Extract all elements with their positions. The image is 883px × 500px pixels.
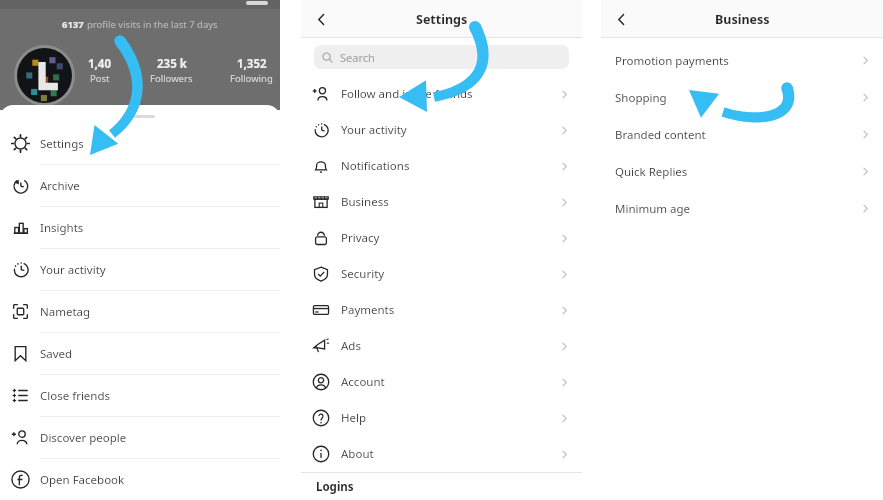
button[interactable]: Back (601, 0, 641, 38)
button[interactable]: Branded content (601, 116, 883, 153)
button[interactable]: Shopping (601, 79, 883, 116)
button[interactable]: Minimum age (601, 190, 883, 227)
button[interactable]: Insights (0, 207, 280, 249)
button[interactable]: Your activity (0, 249, 280, 291)
button[interactable]: Ads (301, 328, 582, 364)
staticText: Insights (40, 220, 84, 236)
staticText: Discover people (40, 430, 127, 446)
staticText: Privacy (341, 230, 380, 246)
staticText: Search (340, 50, 375, 65)
staticText: Notifications (341, 158, 410, 174)
staticText: Security (341, 266, 385, 282)
button[interactable]: Help (301, 400, 582, 436)
staticText: Open Facebook (40, 472, 125, 488)
staticText: Shopping (615, 90, 667, 106)
button[interactable]: Privacy (301, 220, 582, 256)
staticText: profile visits in the last 7 days (87, 18, 218, 31)
staticText: Business (341, 194, 389, 210)
staticText: Settings (416, 11, 468, 28)
button[interactable]: Saved (0, 333, 280, 375)
staticText: Close friends (40, 388, 111, 404)
button[interactable]: Logins (301, 473, 582, 500)
button[interactable]: Payments (301, 292, 582, 328)
button[interactable]: Nametag (0, 291, 280, 333)
button[interactable]: Notifications (301, 148, 582, 184)
staticText: Follow and invite friends (341, 86, 473, 102)
button[interactable]: Security (301, 256, 582, 292)
staticText: 6137 (62, 18, 84, 31)
button[interactable]: Back (301, 0, 341, 38)
staticText: Payments (341, 302, 395, 318)
button[interactable]: Archive (0, 165, 280, 207)
staticText: Business (715, 11, 770, 28)
staticText: 235 k (157, 56, 187, 72)
staticText: Quick Replies (615, 164, 688, 180)
button[interactable]: Search (314, 45, 569, 69)
staticText: Archive (40, 178, 80, 194)
staticText: Help (341, 410, 367, 426)
staticText: Followers (150, 72, 193, 85)
staticText: Ads (341, 338, 361, 354)
staticText: Saved (40, 346, 73, 362)
staticText: Account (341, 374, 385, 390)
button[interactable]: Open Facebook (0, 459, 280, 500)
button[interactable]: About (301, 436, 582, 472)
button[interactable]: Account (301, 364, 582, 400)
staticText: Minimum age (615, 201, 691, 217)
button[interactable]: Close friends (0, 375, 280, 417)
staticText: Following (230, 72, 273, 85)
staticText: Nametag (40, 304, 91, 320)
staticText: Your activity (341, 122, 407, 138)
staticText: Your activity (40, 262, 106, 278)
staticText: Branded content (615, 127, 706, 143)
button[interactable]: Your activity (301, 112, 582, 148)
button[interactable]: Quick Replies (601, 153, 883, 190)
staticText: About (341, 446, 374, 462)
staticText: 1,352 (237, 56, 267, 72)
staticText: Settings (40, 136, 84, 152)
staticText: Promotion payments (615, 53, 729, 69)
staticText: Post (90, 72, 110, 85)
button[interactable]: Settings (0, 123, 280, 165)
button[interactable]: Follow and invite friends (301, 76, 582, 112)
staticText: Logins (316, 479, 354, 495)
button[interactable]: Discover people (0, 417, 280, 459)
button[interactable]: Promotion payments (601, 42, 883, 79)
button[interactable]: Business (301, 184, 582, 220)
staticText: 1,40 (88, 56, 112, 72)
